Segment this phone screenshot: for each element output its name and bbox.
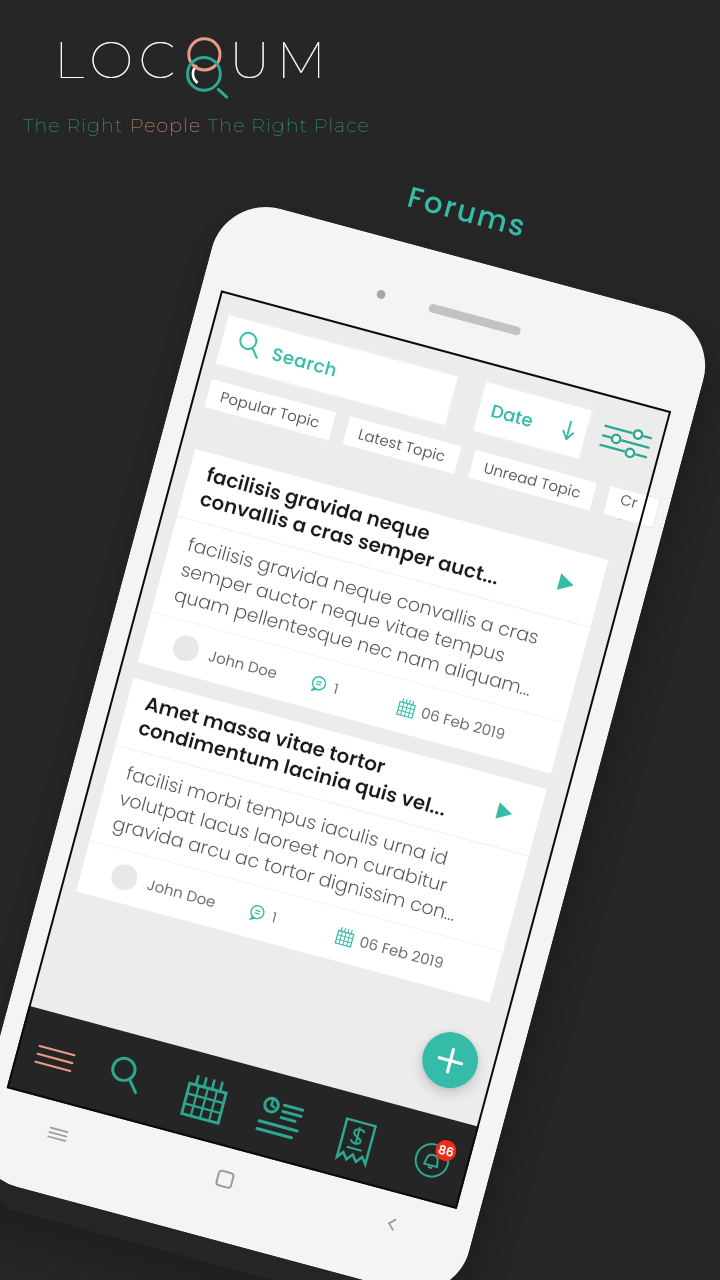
staticText: facilisis gravida neque convallis a cras… bbox=[197, 460, 522, 595]
staticText: Latest Topic bbox=[356, 423, 448, 467]
staticText: Unread Topic bbox=[481, 457, 583, 503]
staticText: UM bbox=[229, 28, 333, 91]
button[interactable]: Date bbox=[472, 381, 593, 460]
staticText: John Doe bbox=[206, 645, 280, 684]
staticText: 1 bbox=[331, 678, 341, 699]
button[interactable]: Filter bbox=[592, 409, 660, 474]
staticText: Popular Topic bbox=[218, 386, 323, 433]
button[interactable]: Unread Topic bbox=[467, 448, 598, 512]
staticText: Forums bbox=[403, 177, 532, 248]
button[interactable]: Cre bbox=[602, 485, 661, 529]
button[interactable]: Timesheets bbox=[251, 1090, 309, 1148]
staticText: 06 Feb 2019 bbox=[419, 702, 508, 745]
staticText: People bbox=[130, 114, 202, 137]
staticText: Search bbox=[269, 341, 340, 383]
staticText: Date bbox=[488, 398, 536, 433]
button[interactable]: Search bbox=[97, 1046, 155, 1105]
button[interactable]: Menu bbox=[26, 1029, 84, 1088]
staticText: 1 bbox=[270, 907, 280, 928]
staticText: The Right bbox=[23, 114, 130, 137]
button[interactable]: Popular Topic bbox=[203, 378, 338, 442]
staticText: Amet massa vitae tortor condimentum laci… bbox=[135, 689, 460, 824]
staticText: facilisi morbi tempus iaculis urna id vo… bbox=[110, 760, 495, 934]
button[interactable]: Amet massa vitae tortor condimentum laci… bbox=[76, 678, 547, 1002]
staticText: facilisis gravida neque convallis a cras… bbox=[171, 531, 557, 705]
button[interactable]: Search bbox=[215, 314, 459, 426]
staticText: The Right Place bbox=[202, 114, 370, 137]
button[interactable]: Add bbox=[416, 1026, 484, 1094]
button[interactable]: Notifications bbox=[405, 1133, 458, 1187]
button[interactable]: Latest Topic bbox=[341, 415, 463, 475]
button[interactable]: Invoices bbox=[326, 1112, 385, 1171]
staticText: LOC bbox=[54, 28, 182, 91]
staticText: 06 Feb 2019 bbox=[357, 931, 447, 974]
button[interactable]: facilisis gravida neque convallis a cras… bbox=[138, 449, 608, 773]
button[interactable]: Calendar bbox=[175, 1069, 234, 1128]
staticText: 86 bbox=[436, 1140, 456, 1161]
staticText: Cre bbox=[615, 488, 648, 525]
staticText: John Doe bbox=[145, 874, 219, 912]
